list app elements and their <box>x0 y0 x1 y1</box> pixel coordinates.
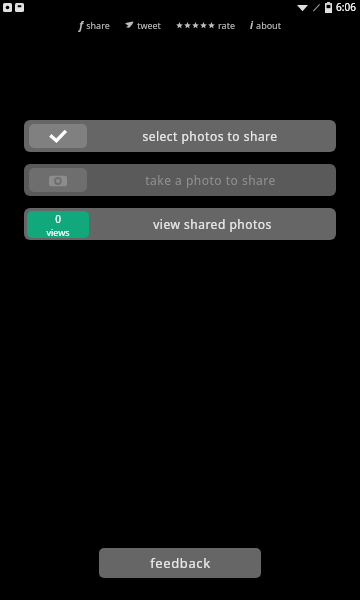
button[interactable]: tweet <box>121 17 165 33</box>
button[interactable]: i <box>246 16 285 34</box>
staticText: feedback <box>150 554 211 572</box>
staticText: about <box>256 19 281 31</box>
other: Select photos <box>50 130 66 143</box>
staticText: view shared photos <box>153 216 272 232</box>
staticText: 0 <box>55 212 61 226</box>
button[interactable]: 0 <box>24 208 336 240</box>
staticText: take a photo to share <box>145 172 276 188</box>
staticText: 6:06 <box>336 0 356 14</box>
other: Take a photo <box>49 174 67 187</box>
staticText: f <box>79 18 83 32</box>
button[interactable]: Take a photo <box>24 164 336 196</box>
button[interactable]: Select photos <box>24 120 336 152</box>
button[interactable]: f <box>75 16 114 34</box>
staticText: share <box>86 19 110 31</box>
button[interactable]: rate <box>172 17 239 33</box>
staticText: tweet <box>137 19 161 31</box>
button[interactable]: feedback <box>99 548 261 578</box>
staticText: rate <box>218 19 235 31</box>
staticText: select photos to share <box>142 128 278 144</box>
staticText: i <box>250 18 253 32</box>
staticText: views <box>46 226 70 238</box>
